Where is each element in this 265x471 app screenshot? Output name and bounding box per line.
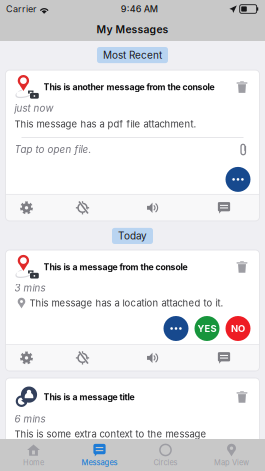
staticText: just now [14,102,53,114]
staticText: Tap to open file. [14,143,91,155]
staticText: Carrier [6,3,36,14]
staticText: Messages [81,458,117,467]
staticText: Map View [214,458,249,467]
button[interactable]: Delete message [233,390,250,404]
staticText: This is some extra context to the messag… [14,428,206,440]
button[interactable]: Today [112,228,153,244]
button[interactable]: Reply [188,195,259,221]
button[interactable]: Home [0,439,66,470]
staticText: This is a message title [43,392,134,402]
staticText: This is another message from the console [43,82,214,92]
button[interactable]: Settings [5,195,47,221]
staticText: My Messages [96,23,168,36]
staticText: This is a message from the console [43,262,187,272]
button[interactable]: YES [194,316,219,341]
staticText: Most Recent [103,49,162,61]
staticText: NO [231,323,245,334]
button[interactable]: Circles [132,439,198,470]
button[interactable]: Messages [66,439,132,470]
button[interactable]: More options [163,316,188,341]
button[interactable]: Delete message [233,260,250,274]
staticText: Circles [153,458,177,467]
button[interactable]: Most Recent [97,47,168,63]
staticText: Home [23,458,44,467]
button[interactable]: Mute location [47,345,117,371]
button[interactable]: More options [225,167,250,192]
staticText: This message has a pdf file attachment. [14,118,196,130]
button[interactable]: Play sound [117,345,188,371]
button[interactable]: Mute location [47,195,117,221]
staticText: 3 mins [14,282,45,294]
staticText: 9:46 AM [121,3,158,14]
staticText: This message has a location attached to … [29,297,223,309]
staticText: 6 mins [14,413,45,425]
staticText: YES [197,323,216,334]
button[interactable]: Reply [188,345,259,371]
button[interactable]: Delete message [233,80,250,94]
button[interactable]: NO [225,316,250,341]
button[interactable]: Play sound [117,195,188,221]
staticText: Today [118,230,147,242]
button[interactable]: Open attachment [236,142,250,156]
button[interactable]: Settings [5,345,47,371]
button[interactable]: Map View [198,439,264,470]
